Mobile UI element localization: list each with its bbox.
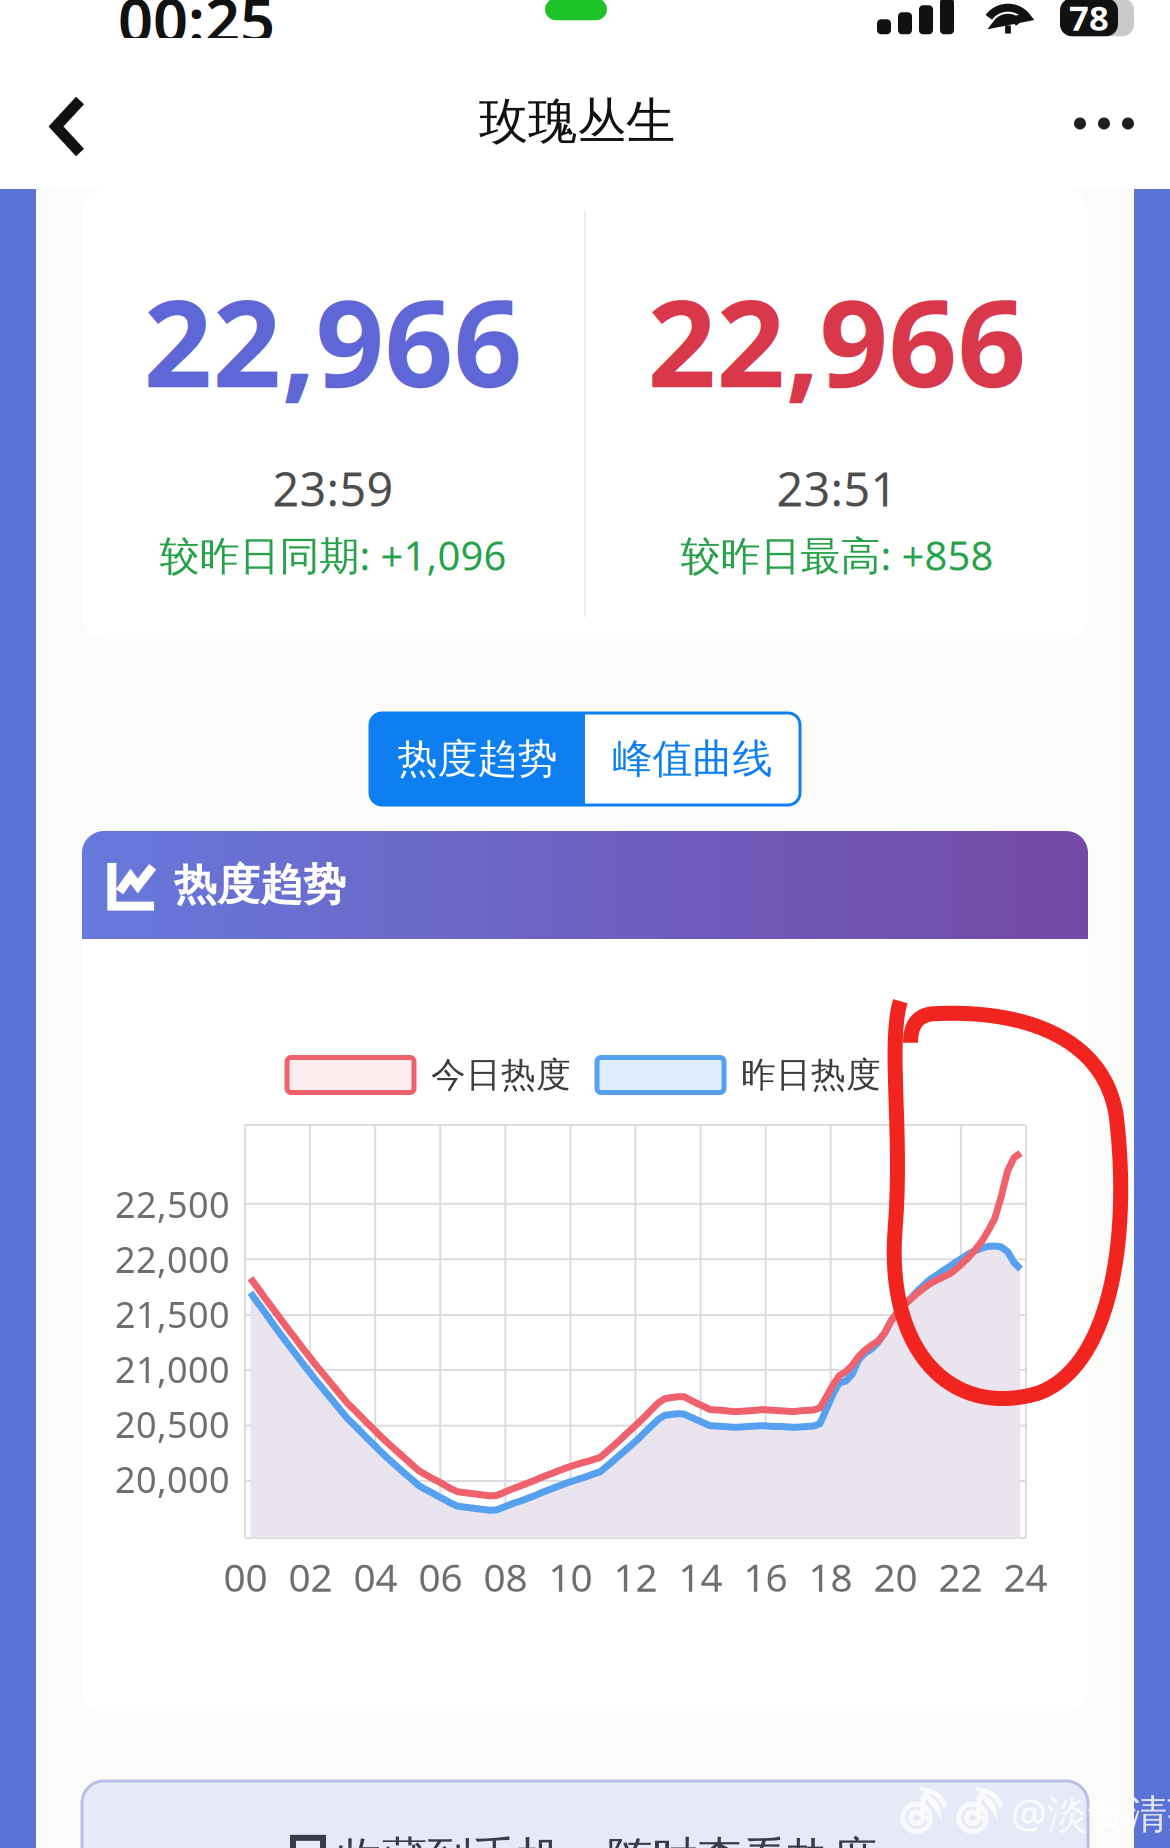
staticText: 06 [418, 1551, 462, 1602]
staticText: 20 [873, 1551, 917, 1602]
staticText: 22,966 [143, 261, 522, 420]
button[interactable]: 峰值曲线 [585, 713, 800, 805]
staticText: 23:59 [272, 457, 393, 519]
staticText: 21,000 [115, 1345, 230, 1393]
staticText: 较昨日同期: +1,096 [159, 528, 506, 581]
staticText: 较昨日最高: +858 [680, 528, 993, 581]
staticText: 04 [353, 1551, 397, 1602]
staticText: 00:25 [118, 0, 275, 60]
staticText: 今日热度 [431, 1054, 571, 1096]
staticText: 热度趋势 [174, 859, 346, 911]
button[interactable]: More options [1040, 54, 1170, 172]
staticText: 收藏到手机，随时查看热度 [337, 1831, 877, 1848]
staticText: 78 [1069, 0, 1109, 40]
staticText: 08 [483, 1551, 527, 1602]
staticText: 14 [678, 1551, 722, 1602]
staticText: 20,000 [115, 1455, 230, 1503]
staticText: @淡食清茶 [1011, 1786, 1170, 1839]
staticText: 热度趋势 [397, 734, 557, 783]
staticText: 02 [288, 1551, 332, 1602]
staticText: 玫瑰丛生 [479, 91, 675, 152]
staticText: 峰值曲线 [612, 734, 772, 783]
staticText: 21,500 [115, 1290, 230, 1338]
staticText: 22,500 [115, 1180, 230, 1228]
staticText: 20,500 [115, 1400, 230, 1448]
staticText: 22,966 [647, 261, 1026, 420]
staticText: 16 [743, 1551, 787, 1602]
staticText: 22 [938, 1551, 982, 1602]
staticText: 22,000 [115, 1235, 230, 1283]
staticText: 23:51 [776, 457, 897, 519]
staticText: 24 [1003, 1551, 1047, 1602]
button[interactable]: 热度趋势 [370, 713, 585, 805]
staticText: 昨日热度 [741, 1054, 881, 1096]
staticText: 10 [548, 1551, 592, 1602]
staticText: 12 [613, 1551, 657, 1602]
staticText: 00 [223, 1551, 267, 1602]
button[interactable]: Back [0, 57, 114, 169]
staticText: 18 [808, 1551, 852, 1602]
